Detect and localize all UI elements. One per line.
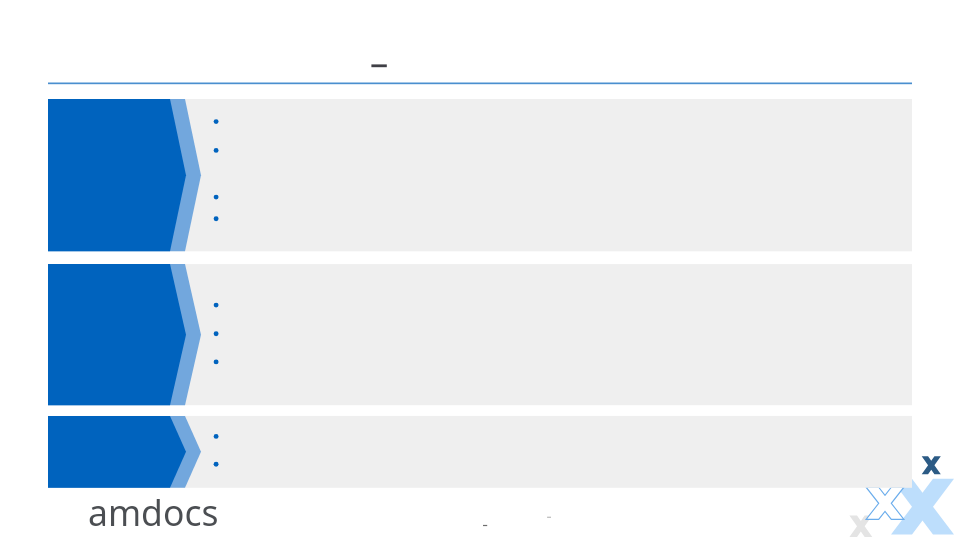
button[interactable]: Section 1	[48, 99, 912, 251]
button[interactable]: Brand mark	[845, 452, 957, 538]
button[interactable]: Slide title	[48, 46, 912, 80]
button[interactable]: amdocs	[88, 488, 219, 536]
button[interactable]: Section 3	[48, 416, 912, 488]
button[interactable]: Section 2	[48, 264, 912, 405]
